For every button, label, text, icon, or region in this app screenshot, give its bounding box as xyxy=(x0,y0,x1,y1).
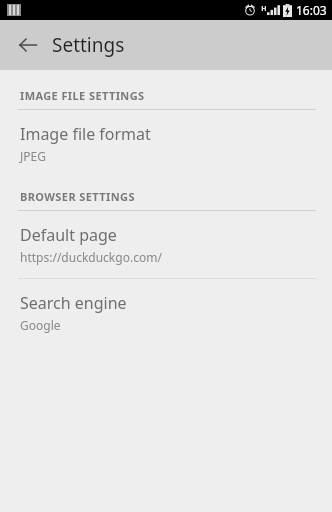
button[interactable]: Image file format xyxy=(0,110,332,177)
button[interactable]: Search engine xyxy=(0,279,332,346)
staticText: Settings xyxy=(52,32,125,58)
staticText: Image file format xyxy=(20,123,151,145)
staticText: Google xyxy=(20,317,61,333)
staticText: H xyxy=(261,4,267,14)
staticText: 16:03 xyxy=(296,2,327,18)
button[interactable]: Default page xyxy=(0,211,332,278)
staticText: Search engine xyxy=(20,292,127,314)
button[interactable]: Back xyxy=(9,26,47,64)
staticText: IMAGE FILE SETTINGS xyxy=(20,88,145,103)
staticText: JPEG xyxy=(20,148,46,164)
staticText: https://duckduckgo.com/ xyxy=(20,249,162,265)
staticText: Default page xyxy=(20,224,117,246)
staticText: BROWSER SETTINGS xyxy=(20,189,135,204)
